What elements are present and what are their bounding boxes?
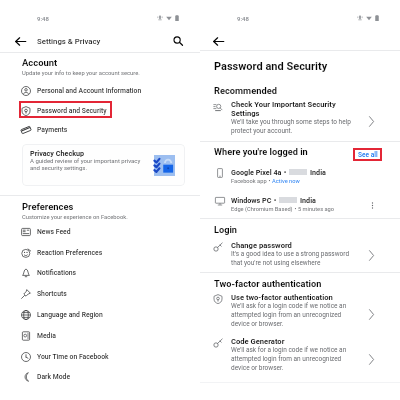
button[interactable]: Payments [0,122,200,137]
staticText: Media [37,332,56,340]
button[interactable]: Language and Region [0,307,200,322]
staticText: Payments [37,126,68,134]
button[interactable]: Change password [200,241,400,270]
staticText: Account [22,57,58,68]
staticText: Privacy Checkup [30,149,85,157]
staticText: We'll ask for a login code if we notice … [231,346,347,372]
button[interactable]: Dark Mode [0,369,200,384]
staticText: It's a good idea to use a strong passwor… [231,250,350,267]
staticText: Password and Security [214,60,328,73]
staticText: A guided review of your important privac… [30,157,141,171]
button[interactable]: Back [210,33,226,49]
button[interactable]: See all [353,148,382,161]
staticText: Code Generator [231,337,285,346]
staticText: Check Your Important Security Settings [231,100,336,118]
staticText: Login [214,224,238,235]
staticText: See all [358,151,378,159]
staticText: We'll ask for a login code if we notice … [231,302,347,328]
staticText: Settings & Privacy [37,37,101,46]
button[interactable]: Settings & Privacy [37,37,101,46]
staticText: • [267,178,272,185]
staticText: Shortcuts [37,290,67,298]
staticText: India [300,196,316,204]
staticText: Password and Security [37,107,107,115]
staticText: Recommended [214,85,277,96]
button[interactable]: Windows PC [200,194,400,214]
button[interactable]: Personal and Account Information [0,83,200,98]
staticText: News Feed [37,228,71,236]
staticText: 9:48 [237,15,249,22]
staticText: Google Pixel 4a [231,168,282,176]
staticText: Edge (Chromium Based) [231,206,293,213]
staticText: 9:48 [37,15,49,22]
button[interactable]: Search [170,33,186,49]
staticText: Active now [272,178,300,185]
button[interactable]: Reaction Preferences [0,245,200,260]
staticText: • [293,206,298,213]
staticText: 5 minutes ago [298,206,335,213]
staticText: Two-factor authentication [214,278,322,289]
staticText: Change password [231,241,292,250]
staticText: Update your info to keep your account se… [22,70,140,77]
staticText: Dark Mode [37,373,71,381]
button[interactable]: Your Time on Facebook [0,349,200,364]
staticText: Windows PC [231,196,272,204]
staticText: Customize your experience on Facebook. [22,214,128,221]
button[interactable]: Privacy Checkup [22,144,185,186]
staticText: Your Time on Facebook [37,353,109,361]
button[interactable]: Media [0,328,200,343]
staticText: Facebook app [231,178,267,185]
button[interactable]: Notifications [0,265,200,280]
staticText: Use two-factor authentication [231,293,333,302]
button[interactable]: Google Pixel 4a [200,166,400,186]
button[interactable]: Password and Security [0,103,200,118]
staticText: We'll take you through some steps to hel… [231,118,351,135]
staticText: Preferences [22,201,74,212]
button[interactable]: More options [366,199,378,211]
staticText: India [310,168,326,176]
staticText: Language and Region [37,311,103,319]
staticText: • [272,196,279,204]
button[interactable]: Shortcuts [0,286,200,301]
button[interactable]: Use two-factor authentication [200,293,400,331]
staticText: Where you're logged in [214,146,308,157]
button[interactable]: Back [12,33,28,49]
staticText: • [282,168,289,176]
staticText: Reaction Preferences [37,249,103,257]
button[interactable]: Check Your Important Security Settings [200,98,400,138]
staticText: Personal and Account Information [37,87,142,95]
staticText: Notifications [37,269,77,277]
button[interactable]: Code Generator [200,337,400,375]
button[interactable]: News Feed [0,224,200,239]
